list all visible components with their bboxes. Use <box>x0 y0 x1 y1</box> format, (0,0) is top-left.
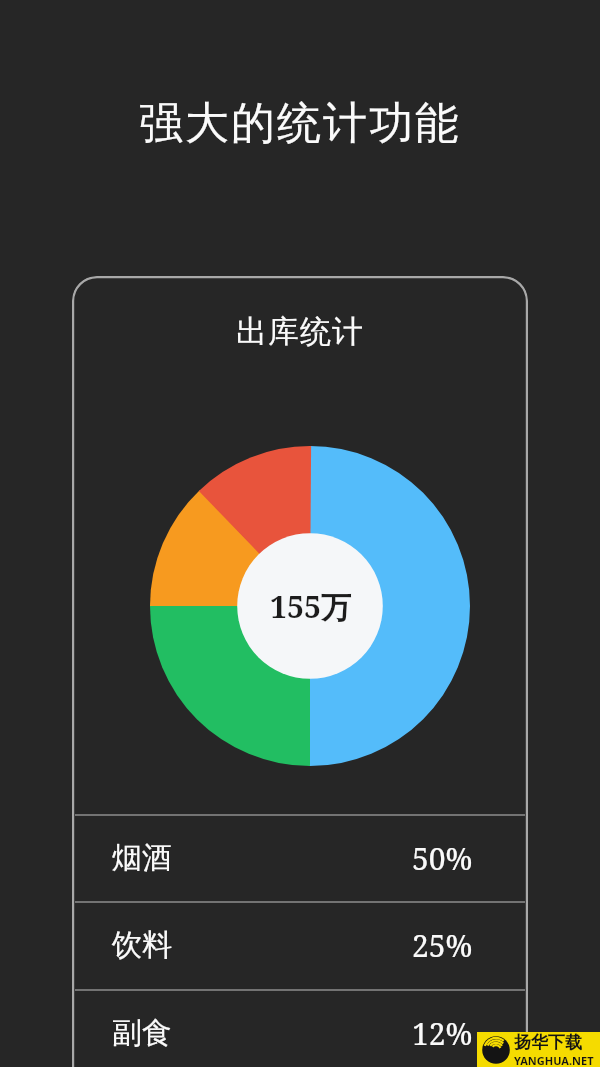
button[interactable]: 副食 <box>75 989 525 1067</box>
staticText: 烟酒 <box>112 839 172 877</box>
staticText: YANGHUA.NET <box>514 1053 594 1067</box>
button[interactable]: 饮料 <box>75 901 525 989</box>
staticText: 25% <box>412 925 473 966</box>
staticText: 155万 <box>270 586 351 627</box>
staticText: 50% <box>412 838 473 879</box>
staticText: 强大的统计功能 <box>0 96 600 151</box>
staticText: 出库统计 <box>72 312 528 351</box>
staticText: 12% <box>412 1013 473 1054</box>
staticText: 副食 <box>112 1014 172 1052</box>
staticText: 饮料 <box>112 926 172 964</box>
staticText: 扬华下载 <box>514 1032 582 1053</box>
other: 扬华下载 YANGHUA.NET <box>477 1032 600 1067</box>
button[interactable]: 出库统计 <box>72 276 528 1067</box>
button[interactable]: 烟酒 <box>75 814 525 902</box>
